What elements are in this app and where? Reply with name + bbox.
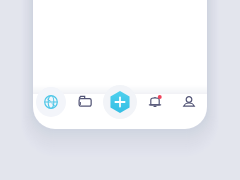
button[interactable]: Files (70, 87, 100, 117)
button[interactable]: Profile (174, 87, 204, 117)
button[interactable]: Add (103, 85, 137, 119)
button[interactable]: Notifications (140, 87, 170, 117)
button[interactable]: Explore (36, 87, 66, 117)
